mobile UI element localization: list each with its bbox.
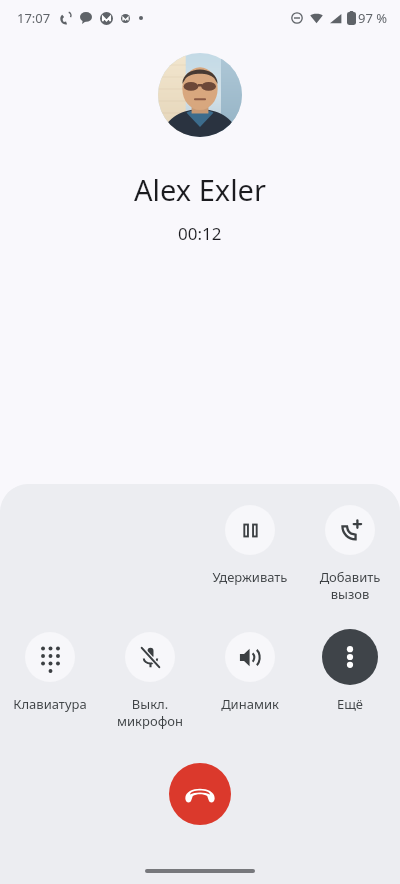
button[interactable]: Завершить вызов [169,763,231,825]
staticText: Ещё [295,695,400,713]
button[interactable]: Ещё [322,629,378,685]
staticText: 00:12 [178,222,222,245]
staticText: Выкл. микрофон [95,695,205,730]
staticText: Клавиатура [0,695,105,713]
button[interactable]: Добавить вызов [325,505,375,555]
staticText: Динамик [195,695,305,713]
staticText: Добавить вызов [295,568,400,603]
button[interactable]: Удерживать [225,505,275,555]
button[interactable]: Динамик [225,632,275,682]
staticText: Удерживать [195,568,305,586]
button[interactable]: Выключить микрофон [125,632,175,682]
staticText: 17:07 [17,9,51,27]
button[interactable]: Клавиатура [25,632,75,682]
staticText: Alex Exler [134,170,266,209]
staticText: 97 % [358,9,388,27]
